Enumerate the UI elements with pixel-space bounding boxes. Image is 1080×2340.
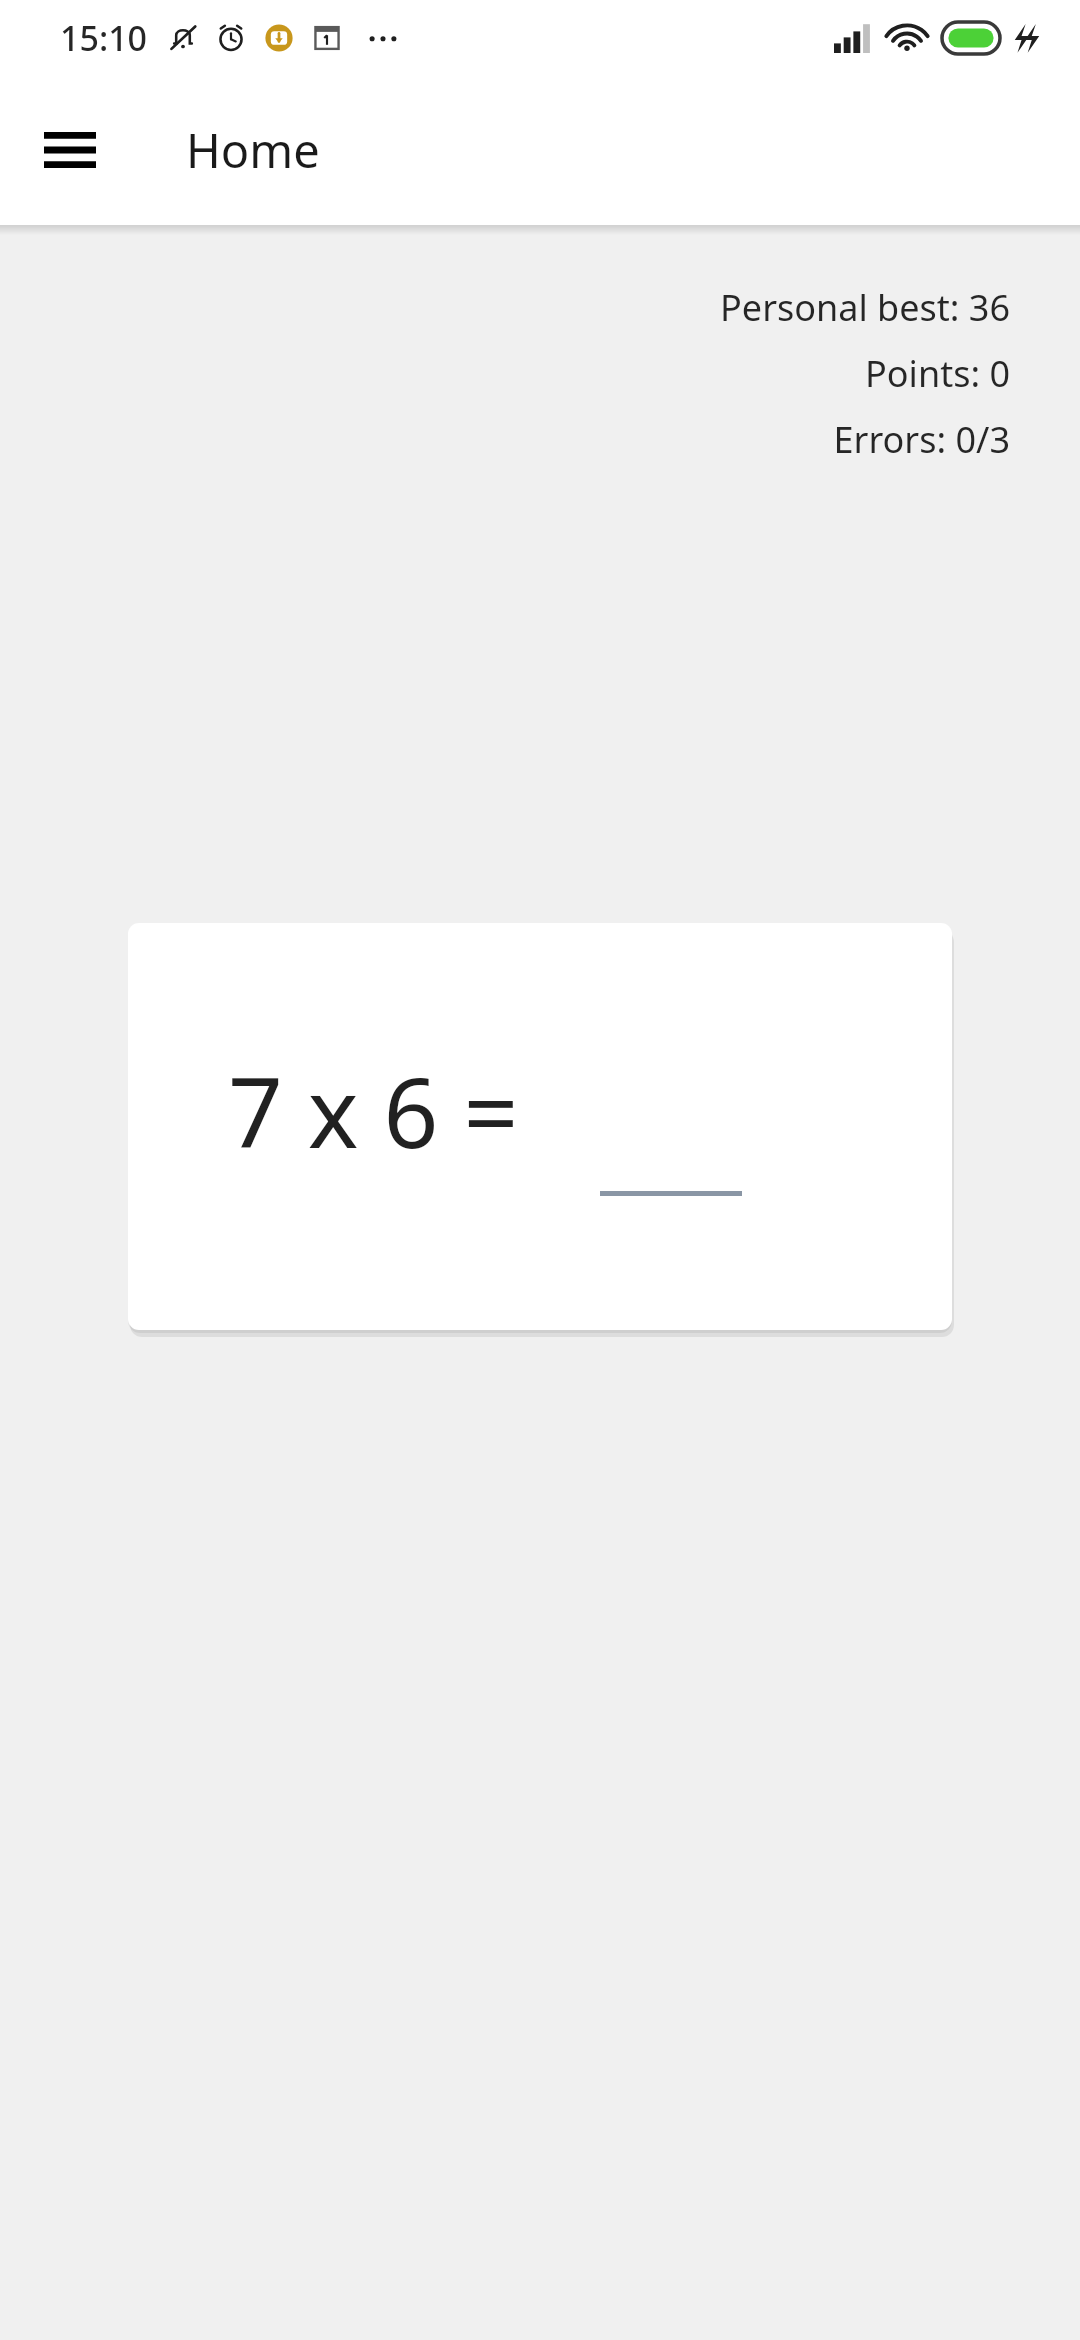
- button[interactable]: Open navigation menu: [20, 100, 120, 200]
- staticText: Personal best: 36: [720, 283, 1010, 332]
- staticText: Errors: 0/3: [833, 415, 1010, 464]
- staticText: Points: 0: [865, 349, 1010, 398]
- button[interactable]: 7 x 6 =: [128, 923, 952, 1330]
- staticText: 7 x 6 =: [228, 1045, 519, 1176]
- staticText: Home: [186, 118, 320, 182]
- staticText: 15:10: [60, 15, 148, 61]
